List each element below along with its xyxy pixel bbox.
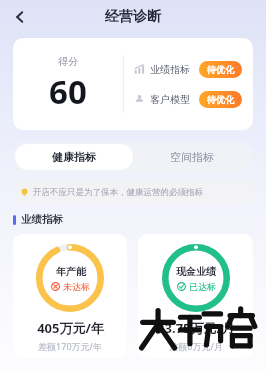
button[interactable]: 健康指标 xyxy=(15,144,133,170)
staticText: 33.75万元/月 xyxy=(157,319,235,337)
staticText: 空间指标 xyxy=(170,150,214,164)
staticText: 业绩指标 xyxy=(21,213,63,226)
staticText: 得分 xyxy=(58,55,78,68)
button[interactable]: 待优化 xyxy=(207,64,234,75)
staticText: 60 xyxy=(49,69,87,114)
staticText: 客户模型 xyxy=(150,93,190,106)
staticText: 健康指标 xyxy=(52,150,96,164)
staticText: 差额0万元/月 xyxy=(169,340,223,352)
button[interactable]: 现金业绩 xyxy=(138,234,253,358)
staticText: 已达标 xyxy=(189,281,216,292)
staticText: 差额170万元/年 xyxy=(38,340,102,352)
staticText: 待优化 xyxy=(207,64,234,75)
staticText: 年产能 xyxy=(56,265,86,278)
button[interactable]: 年产能 xyxy=(13,234,127,358)
staticText: 业绩指标 xyxy=(150,63,190,76)
staticText: 开店不应只是为了保本，健康运营的必须指标 xyxy=(33,187,203,198)
button[interactable]: 客户模型 xyxy=(134,91,242,108)
button[interactable]: 空间指标 xyxy=(133,144,251,170)
staticText: 经营诊断 xyxy=(105,8,161,26)
staticText: 现金业绩 xyxy=(176,265,216,278)
button[interactable]: 业绩指标 xyxy=(134,61,242,78)
button[interactable]: 待优化 xyxy=(207,94,234,105)
staticText: 未达标 xyxy=(63,281,90,292)
staticText: 405万元/年 xyxy=(37,319,104,337)
staticText: 待优化 xyxy=(207,94,234,105)
button[interactable]: Back xyxy=(6,3,34,31)
button[interactable]: 得分 xyxy=(13,38,253,130)
